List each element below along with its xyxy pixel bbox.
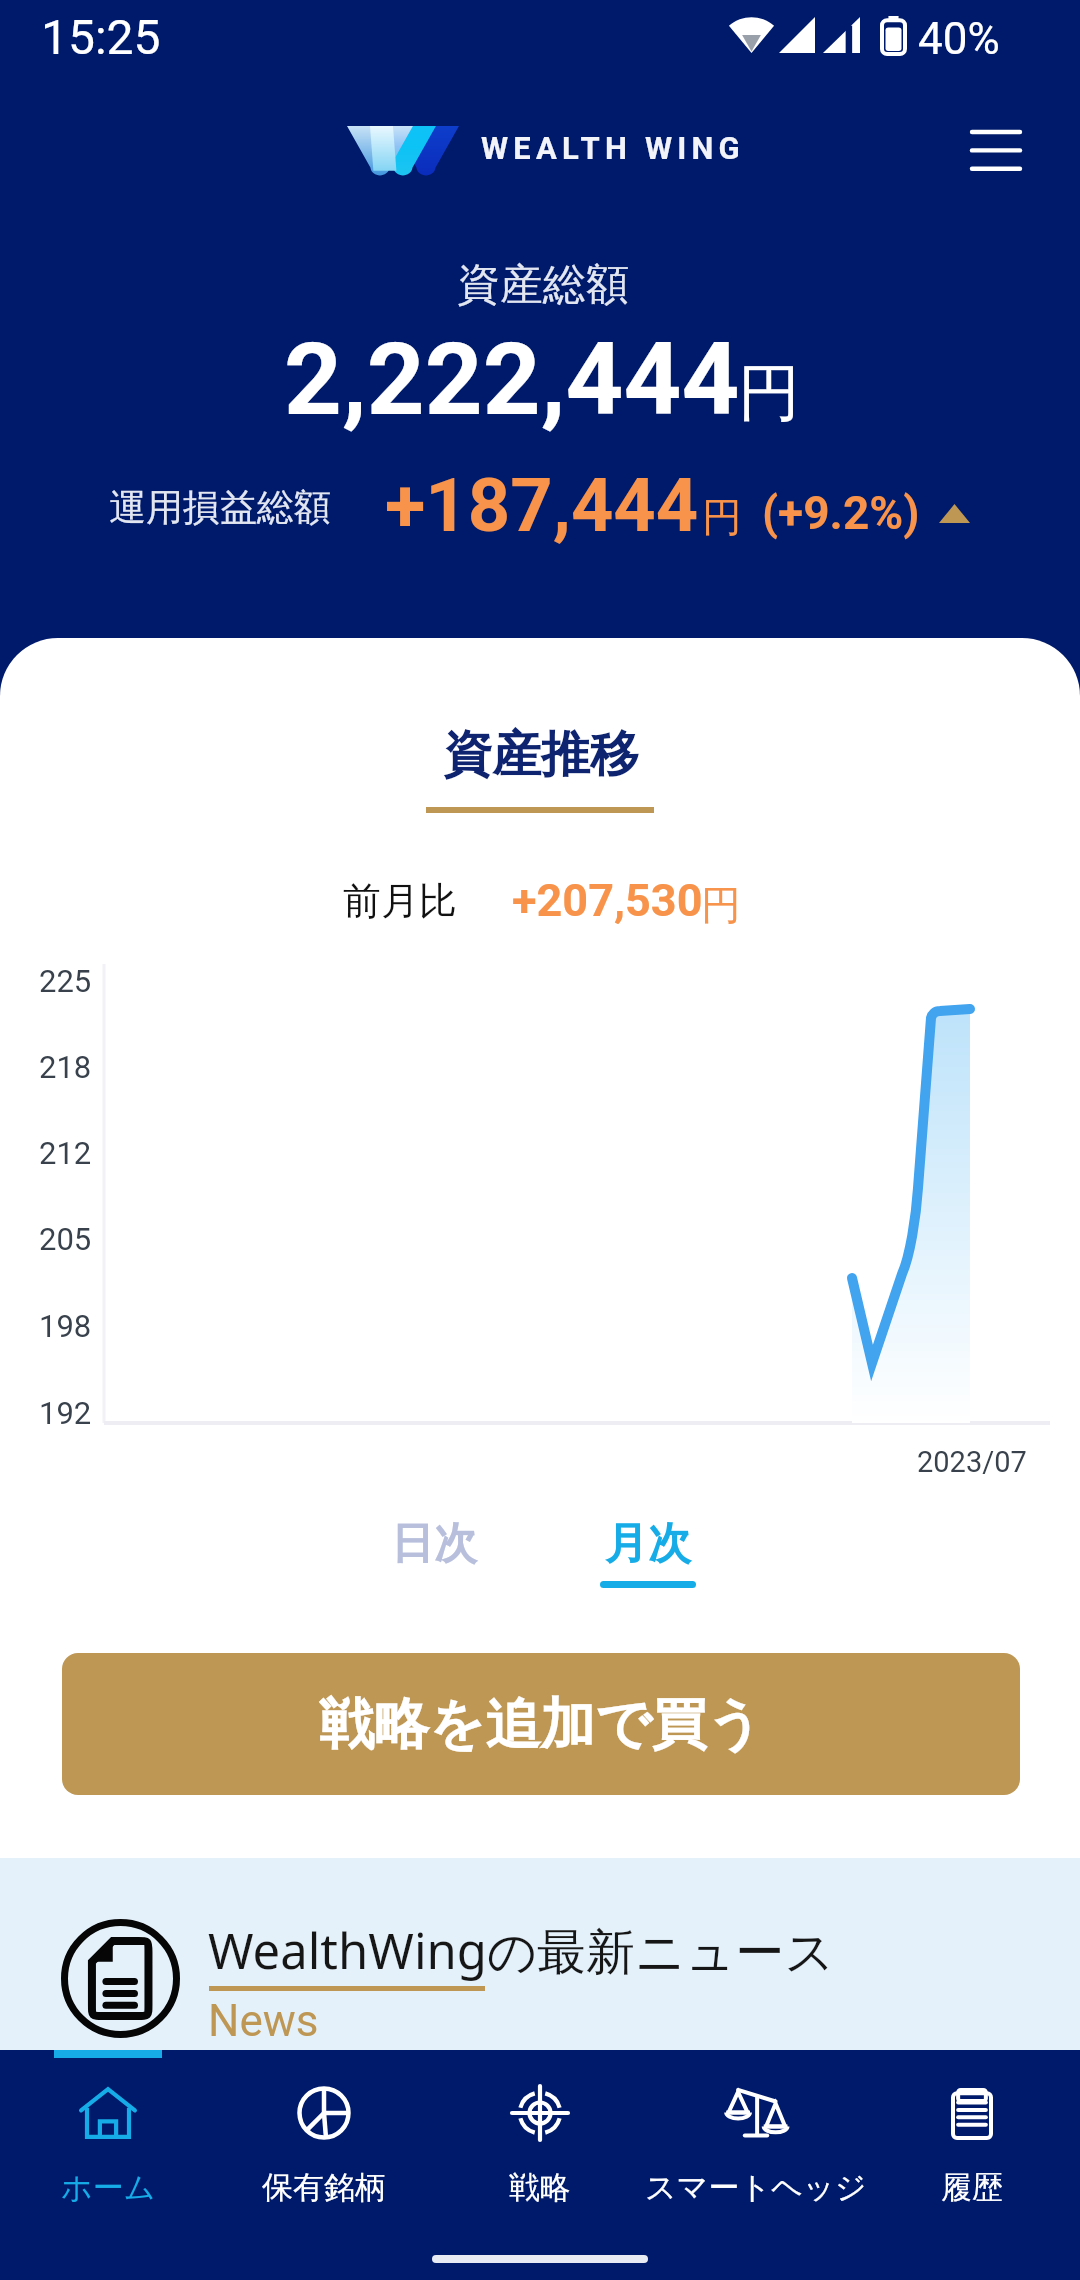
staticText: 218 [39,1049,92,1085]
staticText: 円 [738,354,800,432]
staticText: 日次 [391,1517,477,1571]
button[interactable]: 戦略を追加で買う [62,1653,1020,1795]
staticText: 円 [702,492,742,542]
staticText: スマートヘッジ [645,2168,867,2207]
staticText: 履歴 [941,2168,1003,2207]
staticText: +207,530 [512,874,703,927]
staticText: WealthWingの最新ニュース [208,1917,835,1984]
staticText: 前月比 [343,877,457,925]
staticText: WEALTH WING [481,130,745,166]
button[interactable]: 保有銘柄 [216,2050,432,2152]
staticText: 212 [39,1135,92,1171]
staticText: News [208,1995,319,2047]
button[interactable]: Menu [958,112,1036,190]
staticText: 198 [39,1308,92,1344]
staticText: 2023/07 [917,1445,1027,1479]
staticText: 225 [39,963,92,999]
button[interactable]: 月次 [584,1508,712,1608]
staticText: 2,222,444 [284,320,740,438]
button[interactable]: 戦略 [432,2050,648,2152]
button[interactable]: ホーム [0,2050,216,2152]
staticText: +187,444 [385,462,699,549]
button[interactable]: スマートヘッジ [648,2050,864,2152]
staticText: 運用損益総額 [109,484,331,531]
button[interactable]: WealthWingの最新ニュース [0,1858,1080,2050]
staticText: 保有銘柄 [262,2168,386,2207]
staticText: 円 [701,880,741,930]
staticText: 資産推移 [443,724,639,786]
staticText: 205 [39,1221,92,1257]
staticText: 戦略 [509,2168,571,2207]
button[interactable]: 履歴 [864,2050,1080,2152]
staticText: 戦略を追加で買う [319,1690,763,1759]
staticText: 資産総額 [457,258,629,312]
staticText: (+9.2%) [762,486,920,540]
staticText: 月次 [605,1517,691,1571]
staticText: 40% [918,13,1000,57]
staticText: ホーム [61,2168,156,2207]
button[interactable]: 日次 [370,1508,498,1608]
staticText: 15:25 [41,9,161,65]
staticText: 192 [39,1395,92,1431]
